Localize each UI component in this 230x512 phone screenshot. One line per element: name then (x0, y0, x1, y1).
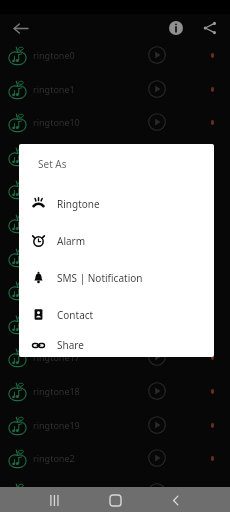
button[interactable]: Contact (19, 296, 214, 333)
button[interactable]: More options (202, 112, 222, 132)
button[interactable]: ringtone18 (0, 375, 230, 407)
staticText: ringtone19 (33, 419, 80, 431)
button[interactable]: ringtone15 (0, 274, 230, 306)
button[interactable]: ringtone0 (0, 39, 230, 71)
button[interactable]: SMS | Notification (19, 259, 214, 296)
button[interactable]: Play (146, 380, 168, 402)
button[interactable]: More options (202, 314, 222, 334)
button[interactable]: More options (202, 381, 222, 401)
staticText: Contact (57, 308, 94, 322)
button[interactable]: ringtone12 (0, 173, 230, 205)
button[interactable]: ringtone1 (0, 73, 230, 105)
staticText: Ringtone (57, 197, 100, 211)
button[interactable]: ringtone10 (0, 106, 230, 138)
button[interactable]: More options (202, 179, 222, 199)
staticText: ringtone1 (33, 83, 75, 95)
button[interactable]: More options (202, 482, 222, 502)
button[interactable]: ringtone2 (0, 442, 230, 474)
button[interactable]: More options (202, 448, 222, 468)
button[interactable]: Play (146, 414, 168, 436)
staticText: ringtone16 (33, 318, 80, 330)
staticText: ringtone10 (33, 116, 80, 128)
button[interactable]: Back (164, 488, 188, 512)
staticText: ringtone11 (33, 150, 80, 162)
button[interactable]: More options (202, 146, 222, 166)
button[interactable]: ringtone20 (0, 476, 230, 508)
staticText: ringtone2 (33, 452, 75, 464)
button[interactable]: Play (146, 111, 168, 133)
button[interactable]: ringtone19 (0, 409, 230, 441)
button[interactable]: Alarm (19, 222, 214, 259)
button[interactable]: More options (202, 280, 222, 300)
button[interactable]: ringtone14 (0, 241, 230, 273)
button[interactable]: Play (146, 44, 168, 66)
button[interactable]: ringtone17 (0, 341, 230, 373)
button[interactable]: ringtone16 (0, 308, 230, 340)
button[interactable]: More options (202, 347, 222, 367)
button[interactable]: Play (146, 447, 168, 469)
staticText: ringtone0 (33, 49, 75, 61)
staticText: Share (57, 338, 84, 352)
button[interactable]: Play (146, 78, 168, 100)
button[interactable]: Home (103, 488, 127, 512)
button[interactable]: Recents (42, 488, 66, 512)
button[interactable]: Ringtone (19, 185, 214, 222)
button[interactable]: More options (202, 213, 222, 233)
staticText: ringtone20 (33, 486, 80, 498)
button[interactable]: Play (146, 346, 168, 368)
button[interactable]: More options (202, 79, 222, 99)
staticText: Alarm (57, 234, 86, 248)
button[interactable]: Info (164, 16, 188, 40)
button[interactable]: More options (202, 247, 222, 267)
button[interactable]: Play (146, 481, 168, 503)
button[interactable]: More options (202, 45, 222, 65)
staticText: ringtone17 (33, 351, 80, 363)
button[interactable]: Back (8, 16, 32, 40)
button[interactable]: ringtone13 (0, 207, 230, 239)
staticText: ringtone18 (33, 385, 80, 397)
button[interactable]: More options (202, 415, 222, 435)
staticText: SMS | Notification (57, 271, 143, 285)
button[interactable]: Share (198, 16, 222, 40)
staticText: Set As (38, 157, 67, 171)
button[interactable]: Share (19, 333, 214, 357)
button[interactable]: ringtone11 (0, 140, 230, 172)
